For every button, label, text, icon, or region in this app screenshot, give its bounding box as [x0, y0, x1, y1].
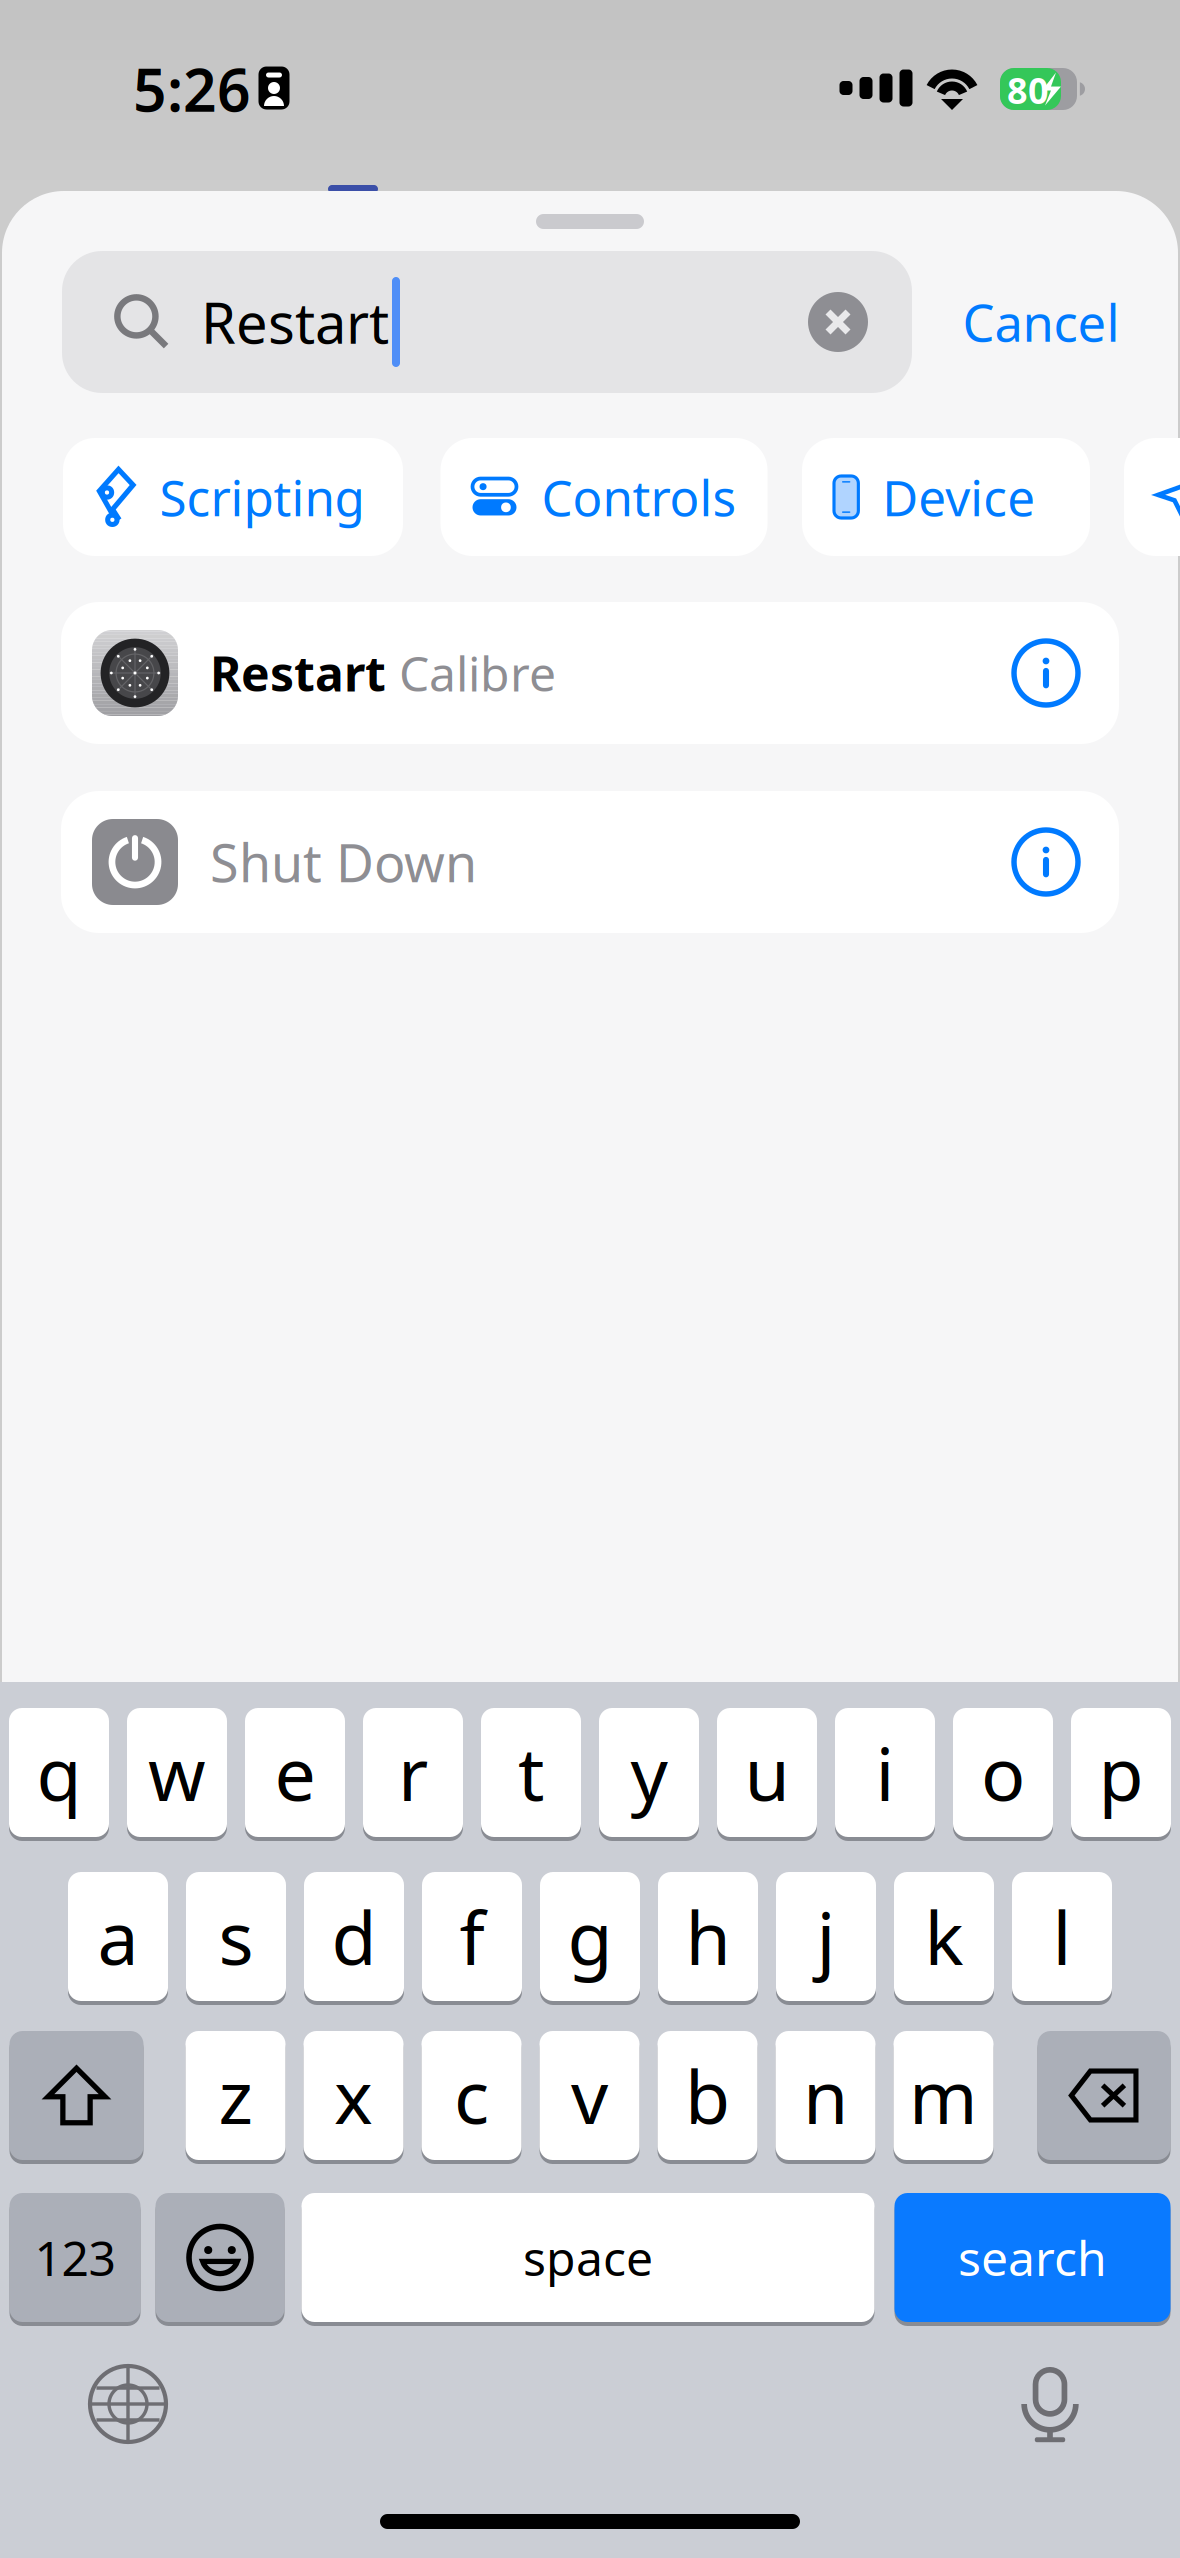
staticText: z [218, 2047, 252, 2144]
button[interactable]: Dictation [1012, 2366, 1088, 2442]
staticText: k [924, 1888, 963, 1985]
button[interactable]: h [658, 1870, 758, 2003]
staticText: b [685, 2047, 730, 2144]
button[interactable]: Restart [61, 602, 1119, 744]
button[interactable]: j [776, 1870, 876, 2003]
button[interactable]: x [303, 2029, 403, 2162]
button[interactable]: Delete [1037, 2029, 1170, 2162]
staticText: a [97, 1888, 138, 1985]
button[interactable]: space [301, 2191, 874, 2324]
staticText: m [909, 2047, 978, 2144]
staticText: e [274, 1724, 315, 1821]
button[interactable]: Emoji [155, 2191, 284, 2324]
button[interactable]: v [539, 2029, 639, 2162]
button[interactable]: g [540, 1870, 640, 2003]
button[interactable]: Cancel [962, 288, 1119, 356]
staticText: w [148, 1724, 206, 1821]
staticText: j [816, 1888, 835, 1985]
staticText: 123 [34, 2226, 115, 2289]
staticText: q [36, 1724, 81, 1821]
button[interactable]: b [657, 2029, 757, 2162]
button[interactable]: p [1071, 1706, 1171, 1839]
staticText: space [523, 2226, 653, 2289]
button[interactable]: d [304, 1870, 404, 2003]
staticText: g [567, 1888, 612, 1985]
staticText: Restart [210, 641, 386, 705]
button[interactable]: k [894, 1870, 994, 2003]
button[interactable]: Next keyboard [90, 2366, 166, 2442]
button[interactable]: search [894, 2191, 1170, 2324]
staticText: u [744, 1724, 789, 1821]
staticText: Cancel [962, 288, 1119, 356]
button[interactable]: Shift [9, 2029, 143, 2162]
staticText: h [685, 1888, 730, 1985]
staticText: i [875, 1724, 894, 1821]
staticText: c [454, 2047, 489, 2144]
button[interactable]: t [481, 1706, 581, 1839]
button[interactable]: y [599, 1706, 699, 1839]
staticText: 5:26 [133, 50, 251, 128]
button[interactable]: Controls [440, 438, 767, 556]
staticText: Scripting [159, 464, 364, 530]
staticText: o [981, 1724, 1025, 1821]
button[interactable]: Restart [62, 251, 912, 393]
button[interactable]: c [421, 2029, 521, 2162]
staticText: search [958, 2226, 1107, 2289]
button[interactable]: q [9, 1706, 109, 1839]
staticText: f [459, 1888, 484, 1985]
staticText: Controls [541, 464, 736, 530]
staticText: Device [882, 464, 1035, 530]
staticText: Shut Down [210, 827, 477, 897]
staticText: x [334, 2047, 373, 2144]
button[interactable]: e [245, 1706, 345, 1839]
button[interactable]: w [127, 1706, 227, 1839]
staticText: l [1052, 1888, 1071, 1985]
staticText: 80 [1007, 66, 1049, 114]
button[interactable]: o [953, 1706, 1053, 1839]
button[interactable]: Device [802, 438, 1090, 556]
staticText: p [1098, 1724, 1143, 1821]
button[interactable]: a [68, 1870, 168, 2003]
button[interactable]: r [363, 1706, 463, 1839]
button[interactable]: l [1012, 1870, 1112, 2003]
button[interactable]: m [893, 2029, 993, 2162]
staticText: y [630, 1724, 667, 1821]
button[interactable]: i [835, 1706, 935, 1839]
button[interactable]: Share [1124, 438, 1180, 556]
button[interactable]: 123 [9, 2191, 140, 2324]
staticText: Calibre [399, 641, 556, 705]
button[interactable]: Shut Down [61, 791, 1119, 933]
staticText: Restart [201, 285, 389, 359]
button[interactable]: z [185, 2029, 285, 2162]
staticText: r [398, 1724, 428, 1821]
button[interactable]: Scripting [63, 438, 403, 556]
button[interactable]: n [775, 2029, 875, 2162]
staticText: n [803, 2047, 848, 2144]
staticText: s [218, 1888, 253, 1985]
staticText: d [331, 1888, 376, 1985]
staticText: v [571, 2047, 608, 2144]
staticText: t [518, 1724, 544, 1821]
button[interactable]: u [717, 1706, 817, 1839]
button[interactable]: s [186, 1870, 286, 2003]
button[interactable]: f [422, 1870, 522, 2003]
